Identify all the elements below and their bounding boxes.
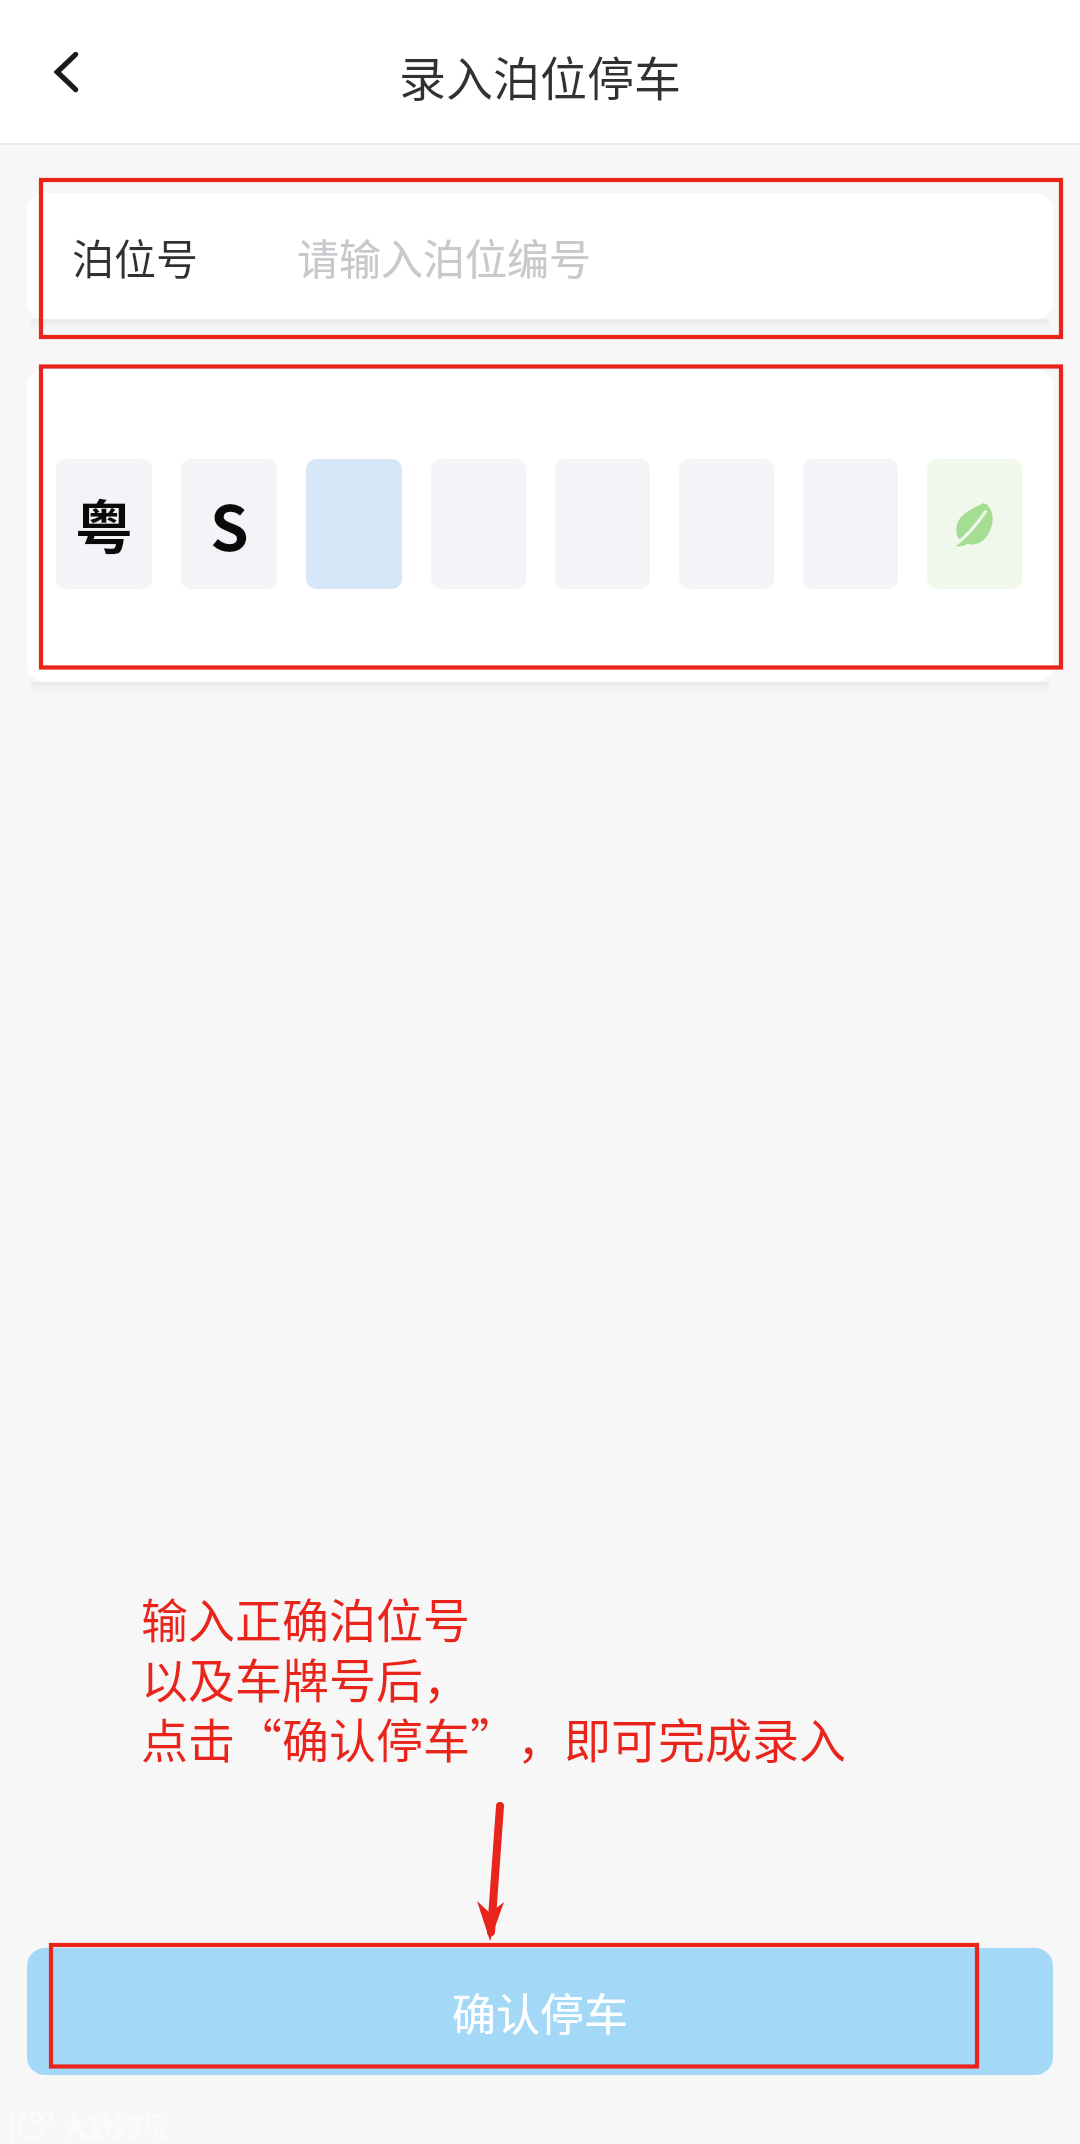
staticText: 泊位号 — [72, 226, 199, 287]
staticText: 请输入泊位编号 — [297, 226, 592, 287]
button[interactable]: S — [181, 459, 277, 589]
button[interactable]: Back — [11, 17, 121, 127]
button[interactable] — [306, 459, 402, 589]
staticText: 输入正确泊位号 以及车牌号后， 点击“确认停车”，即可完成录入 — [141, 1583, 846, 1772]
staticText: 粤 — [75, 482, 134, 566]
button[interactable]: 粤 — [56, 459, 152, 589]
staticText: 确认停车 — [452, 1980, 628, 2044]
staticText: S — [210, 479, 249, 569]
button[interactable]: 新能源 — [927, 459, 1022, 589]
staticText: 录入泊位停车 — [399, 41, 681, 109]
button[interactable]: 确认停车 — [27, 1948, 1053, 2075]
button[interactable]: 泊位号 — [27, 193, 1053, 319]
